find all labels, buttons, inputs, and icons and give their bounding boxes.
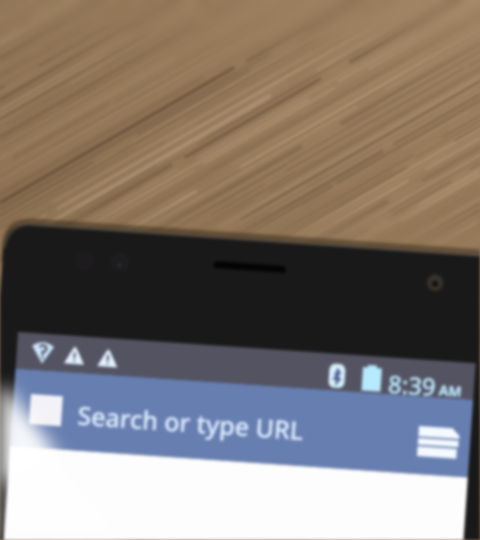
- button[interactable]: Phone on a wooden table showing a browse…: [0, 0, 480, 540]
